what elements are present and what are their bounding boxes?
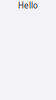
- staticText: Hello: [18, 0, 38, 11]
